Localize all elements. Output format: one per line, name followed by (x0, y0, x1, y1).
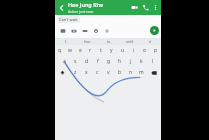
staticText: until (126, 39, 134, 44)
button[interactable]: Gallery (79, 25, 90, 36)
staticText: Can't wait (59, 17, 78, 22)
staticText: s (74, 58, 77, 65)
staticText: four (84, 39, 91, 44)
button[interactable]: Can't wait (57, 16, 80, 23)
button[interactable]: Call (140, 2, 151, 13)
button[interactable]: Emoji (90, 25, 101, 36)
staticText: to (107, 39, 111, 44)
button[interactable]: j (125, 57, 136, 66)
button[interactable]: it (140, 38, 161, 45)
button[interactable]: a (58, 57, 70, 66)
staticText: v (107, 69, 110, 76)
button[interactable]: Stickers (101, 25, 112, 36)
staticText: w (68, 47, 72, 54)
staticText: y (110, 47, 113, 54)
button[interactable]: Hee Jung Rhe (68, 1, 104, 14)
staticText: j (130, 58, 132, 65)
staticText: t (100, 47, 102, 54)
button[interactable]: until (119, 38, 140, 45)
button[interactable]: Back (56, 2, 67, 13)
button[interactable]: p (150, 46, 161, 55)
button[interactable]: n (125, 68, 136, 77)
staticText: l (152, 58, 154, 65)
staticText: I (65, 39, 67, 44)
button[interactable]: Keyboard (57, 25, 68, 36)
button[interactable]: u (117, 46, 128, 55)
button[interactable]: l (147, 57, 158, 66)
button[interactable]: t (95, 46, 106, 55)
staticText: d (85, 58, 89, 65)
button[interactable]: z (70, 68, 81, 77)
staticText: z (74, 69, 77, 76)
staticText: u (121, 47, 125, 54)
staticText: Hee Jung Rhe (68, 1, 104, 8)
button[interactable]: e (75, 46, 85, 55)
button[interactable]: i (128, 46, 139, 55)
staticText: it (149, 39, 152, 44)
staticText: p (154, 47, 158, 54)
staticText: n (129, 69, 133, 76)
staticText: k (140, 58, 143, 65)
button[interactable]: o (139, 46, 150, 55)
staticText: Active just now (68, 9, 94, 14)
button[interactable]: Shift (55, 68, 70, 77)
staticText: q (58, 47, 62, 54)
button[interactable]: Video call (129, 2, 140, 13)
staticText: x (85, 69, 88, 76)
button[interactable]: g (103, 57, 114, 66)
button[interactable]: to (98, 38, 119, 45)
button[interactable]: Send (150, 26, 159, 35)
staticText: r (89, 47, 92, 54)
button[interactable]: More options (151, 3, 160, 12)
button[interactable]: y (106, 46, 117, 55)
button[interactable]: k (136, 57, 147, 66)
staticText: o (143, 47, 147, 54)
staticText: b (118, 69, 122, 76)
staticText: f (97, 58, 99, 65)
button[interactable]: x (81, 68, 92, 77)
button[interactable]: w (65, 46, 75, 55)
staticText: m (139, 69, 144, 76)
button[interactable]: Camera (68, 25, 79, 36)
staticText: g (107, 58, 111, 65)
button[interactable]: four (77, 38, 98, 45)
staticText: i (133, 47, 135, 54)
button[interactable]: b (114, 68, 125, 77)
button[interactable]: d (81, 57, 92, 66)
button[interactable]: c (92, 68, 103, 77)
button[interactable]: h (114, 57, 125, 66)
button[interactable]: m (136, 68, 147, 77)
button[interactable]: f (92, 57, 103, 66)
button[interactable]: I (55, 38, 77, 45)
staticText: c (96, 69, 99, 76)
staticText: e (79, 47, 82, 54)
button[interactable]: Backspace (147, 68, 161, 77)
button[interactable]: q (55, 46, 65, 55)
staticText: a (63, 58, 66, 65)
button[interactable]: v (103, 68, 114, 77)
button[interactable]: r (85, 46, 95, 55)
staticText: h (118, 58, 122, 65)
button[interactable]: s (70, 57, 81, 66)
